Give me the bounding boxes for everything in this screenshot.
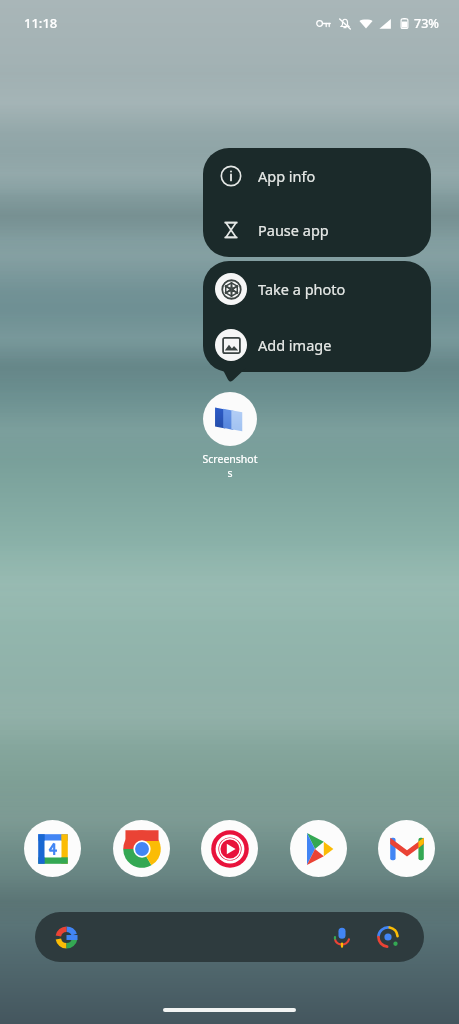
staticText: 73% bbox=[414, 15, 439, 32]
button[interactable]: Chrome bbox=[113, 820, 170, 877]
staticText: App info bbox=[258, 166, 316, 186]
button[interactable]: Play Store bbox=[290, 820, 347, 877]
button[interactable]: Add image bbox=[203, 317, 431, 372]
button[interactable]: Voice search bbox=[327, 922, 357, 952]
staticText: Take a photo bbox=[258, 279, 346, 299]
staticText: Add image bbox=[258, 335, 332, 355]
button[interactable]: Gmail bbox=[378, 820, 435, 877]
button[interactable]: Pause app bbox=[203, 203, 431, 257]
button[interactable]: YouTube Music bbox=[201, 820, 258, 877]
staticText: 11:18 bbox=[24, 14, 58, 32]
button[interactable]: Take a photo bbox=[203, 261, 431, 317]
staticText: Pause app bbox=[258, 220, 329, 240]
staticText: Screenshots bbox=[201, 452, 259, 480]
button[interactable]: App info bbox=[203, 148, 431, 203]
button[interactable]: Google Lens bbox=[373, 922, 403, 952]
button[interactable]: Search bbox=[35, 912, 424, 962]
button[interactable]: Calendar bbox=[24, 820, 81, 877]
button[interactable]: Screenshots bbox=[201, 392, 259, 480]
